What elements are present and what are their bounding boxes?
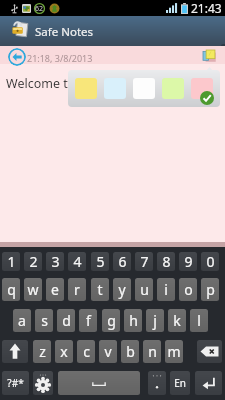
staticText: d: [62, 311, 71, 330]
button[interactable]: y: [113, 278, 131, 301]
staticText: 4: [73, 252, 82, 271]
button[interactable]: g: [102, 309, 120, 332]
staticText: i: [164, 280, 168, 299]
staticText: u: [140, 280, 149, 299]
staticText: b: [126, 342, 135, 361]
button[interactable]: 0: [201, 252, 219, 271]
staticText: v: [104, 342, 112, 361]
button[interactable]: 9: [179, 252, 197, 271]
staticText: o: [184, 280, 193, 299]
button[interactable]: p: [201, 278, 219, 301]
button[interactable]: Back: [8, 48, 26, 66]
button[interactable]: v: [99, 340, 117, 363]
staticText: s: [41, 311, 48, 330]
staticText: e: [51, 280, 59, 299]
button[interactable]: x: [55, 340, 73, 363]
staticText: p: [206, 280, 215, 299]
button[interactable]: w: [24, 278, 42, 301]
button[interactable]: z: [33, 340, 51, 363]
button[interactable]: b: [121, 340, 139, 363]
button[interactable]: d: [57, 309, 75, 332]
staticText: 6: [118, 252, 127, 271]
button[interactable]: k: [168, 309, 186, 332]
staticText: Safe Notes: [35, 24, 94, 40]
button[interactable]: h: [124, 309, 142, 332]
button[interactable]: q: [2, 278, 20, 301]
staticText: c: [83, 342, 90, 361]
staticText: t: [97, 280, 103, 299]
button[interactable]: Period: [148, 371, 166, 395]
staticText: 21:18, 3/8/2013: [27, 52, 93, 64]
button[interactable]: Shift: [2, 340, 28, 363]
button[interactable]: c: [77, 340, 95, 363]
staticText: y: [118, 280, 126, 299]
button[interactable]: 5: [91, 252, 109, 271]
staticText: 3: [51, 252, 60, 271]
button[interactable]: 2: [24, 252, 42, 271]
button[interactable]: Settings: [33, 371, 53, 395]
staticText: m: [167, 342, 181, 361]
button[interactable]: r: [68, 278, 86, 301]
button[interactable]: 3: [46, 252, 64, 271]
button[interactable]: f: [79, 309, 97, 332]
staticText: h: [129, 311, 138, 330]
button[interactable]: Colour swatch: [133, 78, 155, 99]
button[interactable]: t: [91, 278, 109, 301]
staticText: 62: [35, 4, 44, 14]
staticText: n: [148, 342, 157, 361]
button[interactable]: Enter: [195, 371, 222, 395]
button[interactable]: 4: [68, 252, 86, 271]
staticText: 8: [162, 252, 171, 271]
button[interactable]: m: [165, 340, 183, 363]
button[interactable]: e: [46, 278, 64, 301]
staticText: j: [153, 311, 157, 330]
staticText: 1: [7, 252, 16, 271]
staticText: ?#*: [7, 376, 24, 390]
staticText: z: [39, 342, 46, 361]
button[interactable]: s: [35, 309, 53, 332]
button[interactable]: Backspace: [197, 340, 222, 363]
staticText: l: [197, 311, 201, 330]
button[interactable]: ?#*: [2, 371, 29, 395]
button[interactable]: j: [146, 309, 164, 332]
button[interactable]: 8: [157, 252, 175, 271]
button[interactable]: a: [13, 309, 31, 332]
button[interactable]: 1: [2, 252, 20, 271]
button[interactable]: l: [190, 309, 208, 332]
button[interactable]: u: [135, 278, 153, 301]
button[interactable]: En: [170, 371, 190, 395]
staticText: r: [74, 280, 80, 299]
button[interactable]: Colour swatch: [191, 78, 213, 99]
staticText: 5: [96, 252, 105, 271]
button[interactable]: o: [179, 278, 197, 301]
button[interactable]: 7: [135, 252, 153, 271]
staticText: f: [86, 311, 91, 330]
button[interactable]: 6: [113, 252, 131, 271]
button[interactable]: Colour swatch: [75, 78, 97, 99]
staticText: q: [7, 280, 16, 299]
staticText: 21:43: [191, 0, 222, 16]
staticText: g: [107, 311, 116, 330]
button[interactable]: i: [157, 278, 175, 301]
button[interactable]: Space: [58, 371, 140, 395]
staticText: 7: [140, 252, 149, 271]
staticText: 0: [206, 252, 215, 271]
button[interactable]: Colour swatch: [162, 78, 184, 99]
staticText: 9: [184, 252, 193, 271]
staticText: a: [18, 311, 26, 330]
staticText: En: [174, 376, 186, 390]
staticText: 2: [29, 252, 38, 271]
staticText: k: [173, 311, 181, 330]
staticText: x: [60, 342, 68, 361]
staticText: w: [27, 280, 39, 299]
staticText: Welcome to: [6, 75, 76, 92]
button[interactable]: Note colour: [203, 50, 216, 62]
button[interactable]: n: [143, 340, 161, 363]
